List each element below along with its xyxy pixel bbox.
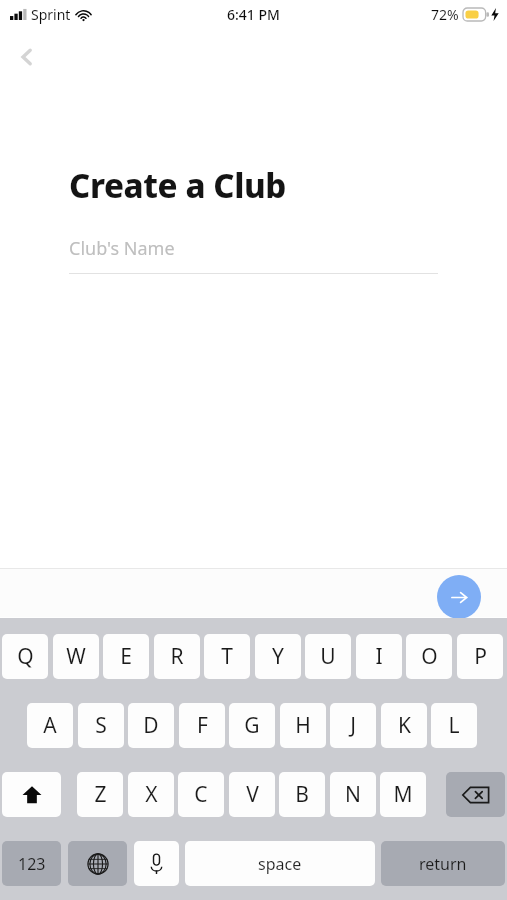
button[interactable]: space [185, 841, 375, 886]
staticText: U [320, 642, 336, 671]
button[interactable]: L [431, 703, 477, 748]
staticText: P [474, 642, 487, 671]
staticText: S [95, 711, 107, 740]
staticText: E [120, 642, 132, 671]
button[interactable]: A [27, 703, 73, 748]
staticText: Sprint [31, 5, 71, 24]
button[interactable]: Y [255, 634, 301, 679]
button[interactable]: K [381, 703, 427, 748]
button[interactable]: Next keyboard [68, 841, 127, 886]
staticText: O [421, 642, 438, 671]
button[interactable]: Q [2, 634, 48, 679]
button[interactable]: X [128, 772, 174, 817]
button[interactable]: M [380, 772, 426, 817]
button[interactable]: V [229, 772, 275, 817]
button[interactable]: E [103, 634, 149, 679]
button[interactable]: F [179, 703, 225, 748]
button[interactable]: U [305, 634, 351, 679]
staticText: return [419, 853, 467, 875]
button[interactable]: C [178, 772, 224, 817]
button[interactable]: G [229, 703, 275, 748]
staticText: J [350, 711, 356, 740]
button[interactable]: Back [4, 34, 50, 80]
staticText: R [170, 642, 184, 671]
button[interactable]: O [406, 634, 452, 679]
staticText: A [43, 711, 57, 740]
button[interactable]: T [204, 634, 250, 679]
staticText: space [258, 853, 302, 875]
button[interactable]: Backspace [446, 772, 505, 817]
button[interactable]: 123 [2, 841, 61, 886]
button[interactable]: I [356, 634, 402, 679]
staticText: Create a Club [69, 163, 286, 208]
staticText: I [375, 642, 383, 671]
staticText: N [345, 780, 361, 809]
staticText: F [197, 711, 208, 740]
staticText: Q [17, 642, 34, 671]
button[interactable]: D [128, 703, 174, 748]
staticText: T [221, 642, 233, 671]
staticText: V [246, 780, 259, 809]
staticText: M [393, 780, 413, 809]
button[interactable]: P [457, 634, 503, 679]
staticText: D [143, 711, 159, 740]
staticText: B [295, 780, 309, 809]
staticText: K [398, 711, 411, 740]
staticText: G [244, 711, 260, 740]
staticText: W [66, 642, 86, 671]
button[interactable]: Shift [2, 772, 61, 817]
staticText: X [145, 780, 158, 809]
button[interactable]: Dictate [134, 841, 179, 886]
staticText: 6:41 PM [227, 5, 280, 24]
button[interactable]: H [280, 703, 326, 748]
button[interactable]: Continue [437, 575, 481, 619]
button[interactable]: B [279, 772, 325, 817]
staticText: C [194, 780, 208, 809]
button[interactable]: R [154, 634, 200, 679]
staticText: Club's Name [69, 236, 175, 261]
staticText: H [295, 711, 311, 740]
button[interactable]: S [78, 703, 124, 748]
button[interactable]: Z [77, 772, 123, 817]
staticText: 72% [431, 5, 459, 24]
staticText: Y [272, 642, 284, 671]
button[interactable]: N [330, 772, 376, 817]
staticText: 123 [18, 853, 46, 875]
button[interactable]: Club's Name [69, 236, 438, 274]
button[interactable]: J [330, 703, 376, 748]
button[interactable]: return [381, 841, 505, 886]
staticText: Z [94, 780, 107, 809]
button[interactable]: W [53, 634, 99, 679]
staticText: L [448, 711, 460, 740]
